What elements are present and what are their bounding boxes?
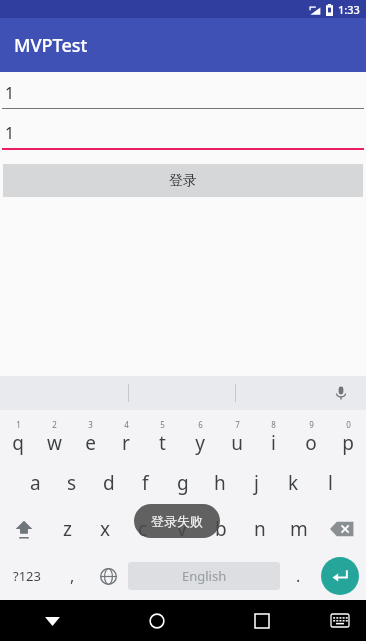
staticText: u bbox=[231, 430, 243, 456]
staticText: n bbox=[254, 516, 266, 542]
button[interactable]: a bbox=[17, 460, 53, 506]
button[interactable]: d bbox=[90, 460, 127, 506]
button[interactable]: z bbox=[48, 506, 86, 552]
staticText: 0 bbox=[346, 419, 351, 430]
button[interactable]: Backspace bbox=[318, 506, 366, 552]
staticText: h bbox=[214, 470, 226, 496]
staticText: 登录失败 bbox=[151, 513, 203, 529]
button[interactable]: Switch keyboard bbox=[314, 600, 366, 641]
button[interactable]: Shift bbox=[0, 506, 48, 552]
button[interactable]: Voice input bbox=[329, 381, 353, 405]
staticText: d bbox=[103, 470, 115, 496]
button[interactable]: 5 bbox=[144, 414, 181, 460]
button[interactable]: s bbox=[53, 460, 90, 506]
button[interactable]: 1 bbox=[0, 117, 366, 158]
staticText: p bbox=[342, 430, 354, 456]
staticText: 1 bbox=[5, 82, 15, 104]
staticText: English bbox=[182, 567, 227, 585]
staticText: x bbox=[100, 516, 111, 542]
button[interactable]: English bbox=[128, 562, 280, 590]
staticText: . bbox=[296, 565, 301, 587]
staticText: f bbox=[142, 470, 149, 496]
staticText: , bbox=[70, 565, 75, 587]
button[interactable]: 6 bbox=[181, 414, 218, 460]
button[interactable]: 1 bbox=[0, 414, 36, 460]
button[interactable]: j bbox=[238, 460, 275, 506]
button[interactable]: , bbox=[54, 552, 90, 600]
staticText: r bbox=[122, 430, 130, 456]
staticText: 1 bbox=[5, 122, 15, 144]
button[interactable]: 2 bbox=[36, 414, 72, 460]
button[interactable]: h bbox=[201, 460, 238, 506]
button[interactable]: 8 bbox=[255, 414, 292, 460]
staticText: v bbox=[177, 516, 187, 542]
button[interactable]: 4 bbox=[108, 414, 144, 460]
staticText: 3 bbox=[88, 419, 93, 430]
staticText: a bbox=[30, 470, 41, 496]
staticText: m bbox=[290, 516, 308, 542]
button[interactable]: Change language bbox=[90, 552, 126, 600]
staticText: 5 bbox=[160, 419, 165, 430]
staticText: MVPTest bbox=[14, 33, 88, 58]
staticText: s bbox=[67, 470, 77, 496]
button[interactable]: 1 bbox=[0, 77, 366, 117]
staticText: b bbox=[215, 516, 227, 542]
button[interactable]: 登录 bbox=[3, 164, 363, 197]
button[interactable]: b bbox=[201, 506, 240, 552]
button[interactable]: Recents bbox=[209, 600, 314, 641]
button[interactable]: x bbox=[86, 506, 124, 552]
button[interactable]: ?123 bbox=[0, 552, 54, 600]
staticText: 6 bbox=[198, 419, 203, 430]
staticText: 9 bbox=[309, 419, 314, 430]
staticText: y bbox=[195, 430, 205, 456]
staticText: g bbox=[177, 470, 189, 496]
button[interactable]: 9 bbox=[292, 414, 329, 460]
button[interactable]: 7 bbox=[218, 414, 255, 460]
staticText: 8 bbox=[271, 419, 276, 430]
button[interactable]: Enter bbox=[314, 552, 366, 600]
staticText: 2 bbox=[52, 419, 57, 430]
button[interactable]: g bbox=[164, 460, 201, 506]
staticText: 7 bbox=[235, 419, 240, 430]
staticText: q bbox=[12, 430, 24, 456]
staticText: z bbox=[63, 516, 72, 542]
button[interactable]: . bbox=[282, 552, 314, 600]
button[interactable]: v bbox=[162, 506, 201, 552]
staticText: i bbox=[271, 430, 276, 456]
staticText: 1:33 bbox=[338, 2, 360, 17]
button[interactable]: Back bbox=[0, 600, 104, 641]
button[interactable]: l bbox=[312, 460, 349, 506]
staticText: w bbox=[47, 430, 62, 456]
button[interactable]: k bbox=[275, 460, 312, 506]
staticText: 1 bbox=[16, 419, 21, 430]
staticText: 4 bbox=[124, 419, 129, 430]
staticText: ?123 bbox=[13, 567, 41, 585]
button[interactable]: c bbox=[124, 506, 162, 552]
button[interactable]: Home bbox=[104, 600, 209, 641]
staticText: c bbox=[138, 516, 148, 542]
button[interactable]: n bbox=[240, 506, 279, 552]
staticText: j bbox=[254, 470, 259, 496]
button[interactable]: m bbox=[279, 506, 318, 552]
staticText: e bbox=[85, 430, 96, 456]
button[interactable]: 3 bbox=[72, 414, 108, 460]
button[interactable]: f bbox=[127, 460, 164, 506]
staticText: 登录 bbox=[169, 172, 197, 190]
staticText: l bbox=[328, 470, 333, 496]
staticText: k bbox=[288, 470, 299, 496]
button[interactable]: 0 bbox=[329, 414, 366, 460]
staticText: o bbox=[305, 430, 317, 456]
staticText: t bbox=[159, 430, 166, 456]
